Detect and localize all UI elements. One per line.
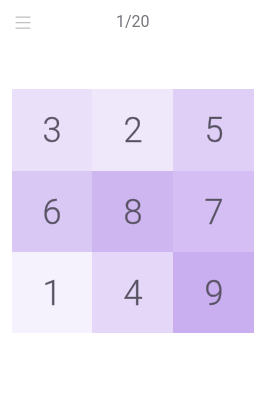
staticText: 4 xyxy=(123,273,143,313)
staticText: 1 xyxy=(42,273,62,313)
staticText: 8 xyxy=(123,192,143,232)
button[interactable]: 9 xyxy=(173,252,254,333)
staticText: 7 xyxy=(204,192,224,232)
button[interactable]: 6 xyxy=(12,171,92,252)
staticText: 8 xyxy=(123,192,143,232)
button[interactable]: 2 xyxy=(92,89,173,171)
staticText: 1 xyxy=(42,273,62,313)
staticText: 5 xyxy=(204,110,224,150)
button[interactable]: 4 xyxy=(92,252,173,333)
button[interactable]: 3 xyxy=(12,89,92,171)
staticText: 5 xyxy=(204,110,224,150)
staticText: 3 xyxy=(42,110,62,150)
staticText: 4 xyxy=(123,273,143,313)
button[interactable]: 7 xyxy=(173,171,254,252)
staticText: 2 xyxy=(123,110,143,150)
staticText: 6 xyxy=(42,192,62,232)
button[interactable]: Menu xyxy=(12,11,34,33)
staticText: 1/20 xyxy=(116,12,150,31)
button[interactable]: 8 xyxy=(92,171,173,252)
staticText: 2 xyxy=(123,110,143,150)
button[interactable]: 5 xyxy=(173,89,254,171)
staticText: 9 xyxy=(204,273,224,313)
button[interactable]: 1 xyxy=(12,252,92,333)
staticText: 6 xyxy=(42,192,62,232)
staticText: 7 xyxy=(204,192,224,232)
staticText: 3 xyxy=(42,110,62,150)
staticText: 9 xyxy=(204,273,224,313)
